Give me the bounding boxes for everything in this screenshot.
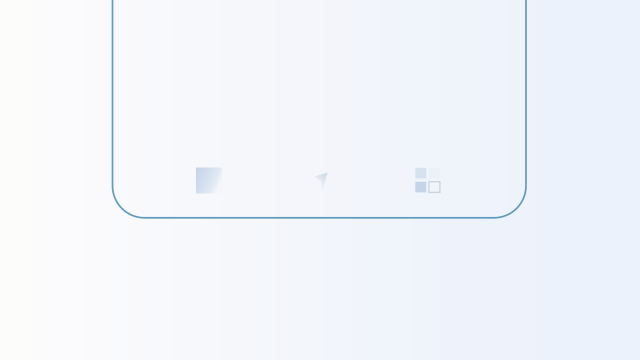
button[interactable]: Library [154, 154, 263, 206]
button[interactable]: Grid [372, 154, 481, 206]
